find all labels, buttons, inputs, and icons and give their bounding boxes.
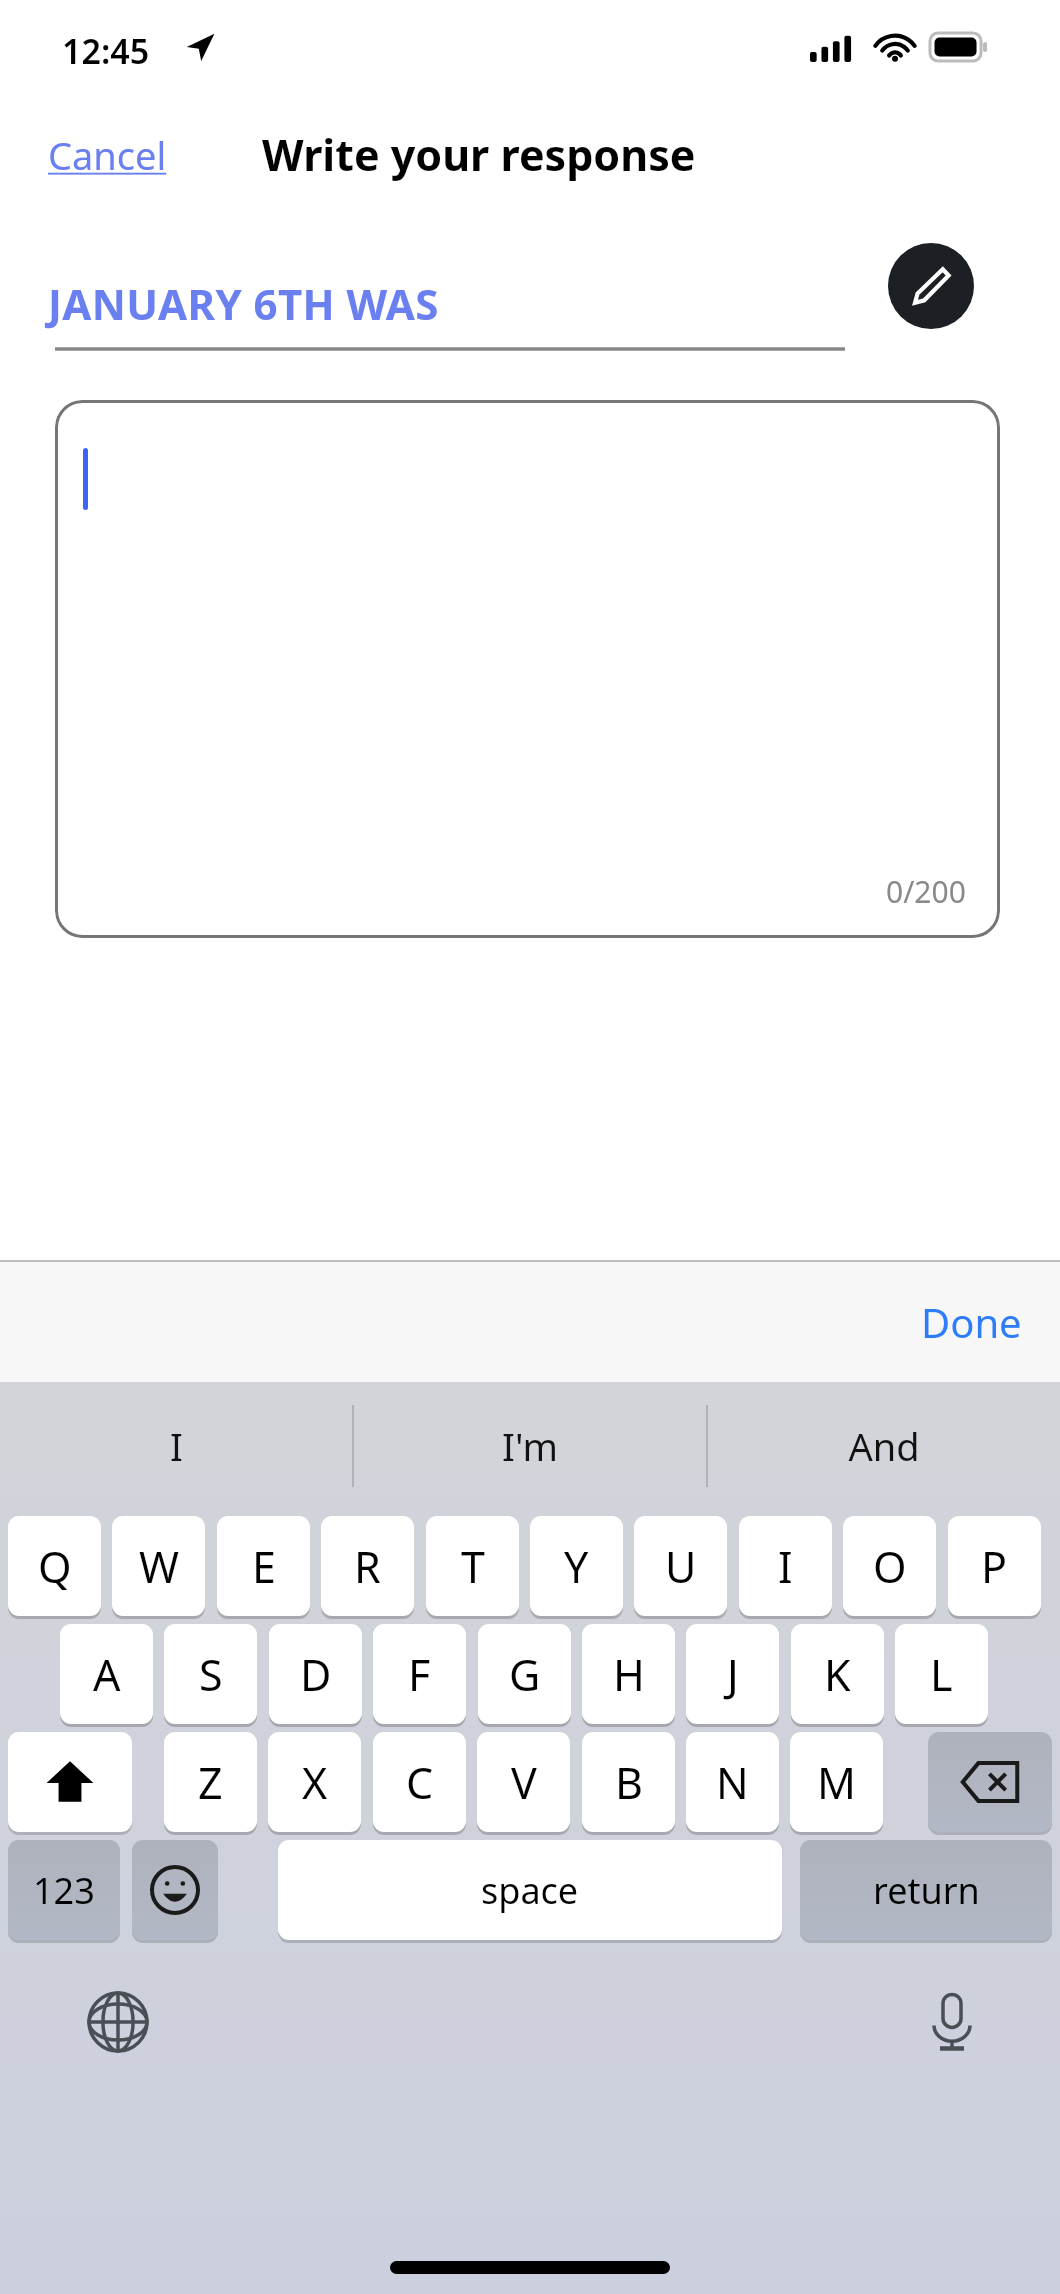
- button[interactable]: D: [269, 1624, 362, 1724]
- button[interactable]: P: [948, 1516, 1041, 1616]
- button[interactable]: Dictate: [912, 1982, 992, 2062]
- button[interactable]: And: [707, 1382, 1060, 1510]
- staticText: 12:45: [62, 28, 150, 74]
- button[interactable]: L: [895, 1624, 988, 1724]
- button[interactable]: Shift: [8, 1732, 132, 1832]
- button[interactable]: F: [373, 1624, 466, 1724]
- staticText: I: [170, 1420, 183, 1472]
- staticText: JANUARY 6TH WAS: [48, 275, 439, 332]
- button[interactable]: J: [686, 1624, 779, 1724]
- button[interactable]: T: [426, 1516, 519, 1616]
- staticText: V: [511, 1753, 537, 1812]
- button[interactable]: return: [800, 1840, 1052, 1940]
- staticText: T: [461, 1537, 485, 1596]
- button[interactable]: C: [373, 1732, 466, 1832]
- staticText: D: [300, 1645, 332, 1704]
- button[interactable]: Change keyboard: [78, 1982, 158, 2062]
- button[interactable]: Y: [530, 1516, 623, 1616]
- button[interactable]: W: [112, 1516, 205, 1616]
- staticText: G: [509, 1645, 541, 1704]
- button[interactable]: B: [582, 1732, 675, 1832]
- button[interactable]: space: [278, 1840, 782, 1940]
- staticText: A: [93, 1645, 121, 1704]
- staticText: N: [716, 1753, 749, 1812]
- staticText: J: [727, 1645, 739, 1704]
- staticText: I: [778, 1537, 793, 1596]
- staticText: O: [873, 1537, 907, 1596]
- staticText: C: [406, 1753, 434, 1812]
- staticText: space: [481, 1866, 579, 1915]
- button[interactable]: 0/200: [55, 400, 1000, 938]
- staticText: E: [252, 1537, 276, 1596]
- staticText: F: [408, 1645, 431, 1704]
- staticText: Z: [198, 1753, 223, 1812]
- button[interactable]: O: [843, 1516, 936, 1616]
- button[interactable]: S: [164, 1624, 257, 1724]
- staticText: 123: [33, 1866, 95, 1915]
- button[interactable]: Edit prompt: [888, 243, 974, 329]
- staticText: Y: [564, 1537, 589, 1596]
- button[interactable]: I: [0, 1382, 353, 1510]
- staticText: Done: [921, 1295, 1022, 1349]
- staticText: Write your response: [262, 125, 696, 184]
- button[interactable]: M: [790, 1732, 883, 1832]
- staticText: B: [615, 1753, 643, 1812]
- button[interactable]: V: [477, 1732, 570, 1832]
- staticText: R: [354, 1537, 381, 1596]
- button[interactable]: Delete: [928, 1732, 1052, 1832]
- staticText: Cancel: [48, 129, 167, 181]
- button[interactable]: Done: [909, 1287, 1034, 1357]
- staticText: return: [873, 1866, 980, 1915]
- button[interactable]: E: [217, 1516, 310, 1616]
- staticText: W: [139, 1537, 179, 1596]
- button[interactable]: I'm: [353, 1382, 706, 1510]
- button[interactable]: I: [739, 1516, 832, 1616]
- button[interactable]: Z: [164, 1732, 257, 1832]
- button[interactable]: R: [321, 1516, 414, 1616]
- button[interactable]: Q: [8, 1516, 101, 1616]
- button[interactable]: H: [582, 1624, 675, 1724]
- button[interactable]: Emoji: [132, 1840, 218, 1940]
- staticText: L: [930, 1645, 953, 1704]
- button[interactable]: A: [60, 1624, 153, 1724]
- button[interactable]: N: [686, 1732, 779, 1832]
- staticText: K: [824, 1645, 851, 1704]
- staticText: Q: [38, 1537, 72, 1596]
- staticText: M: [817, 1753, 857, 1812]
- button[interactable]: K: [791, 1624, 884, 1724]
- button[interactable]: G: [478, 1624, 571, 1724]
- staticText: U: [665, 1537, 697, 1596]
- button[interactable]: 123: [8, 1840, 120, 1940]
- staticText: I'm: [502, 1420, 558, 1472]
- staticText: X: [302, 1753, 328, 1812]
- staticText: H: [613, 1645, 645, 1704]
- staticText: S: [199, 1645, 223, 1704]
- button[interactable]: X: [268, 1732, 361, 1832]
- button[interactable]: U: [634, 1516, 727, 1616]
- staticText: P: [981, 1537, 1008, 1596]
- staticText: And: [848, 1420, 920, 1472]
- staticText: 0/200: [886, 871, 966, 912]
- button[interactable]: Cancel: [40, 123, 175, 187]
